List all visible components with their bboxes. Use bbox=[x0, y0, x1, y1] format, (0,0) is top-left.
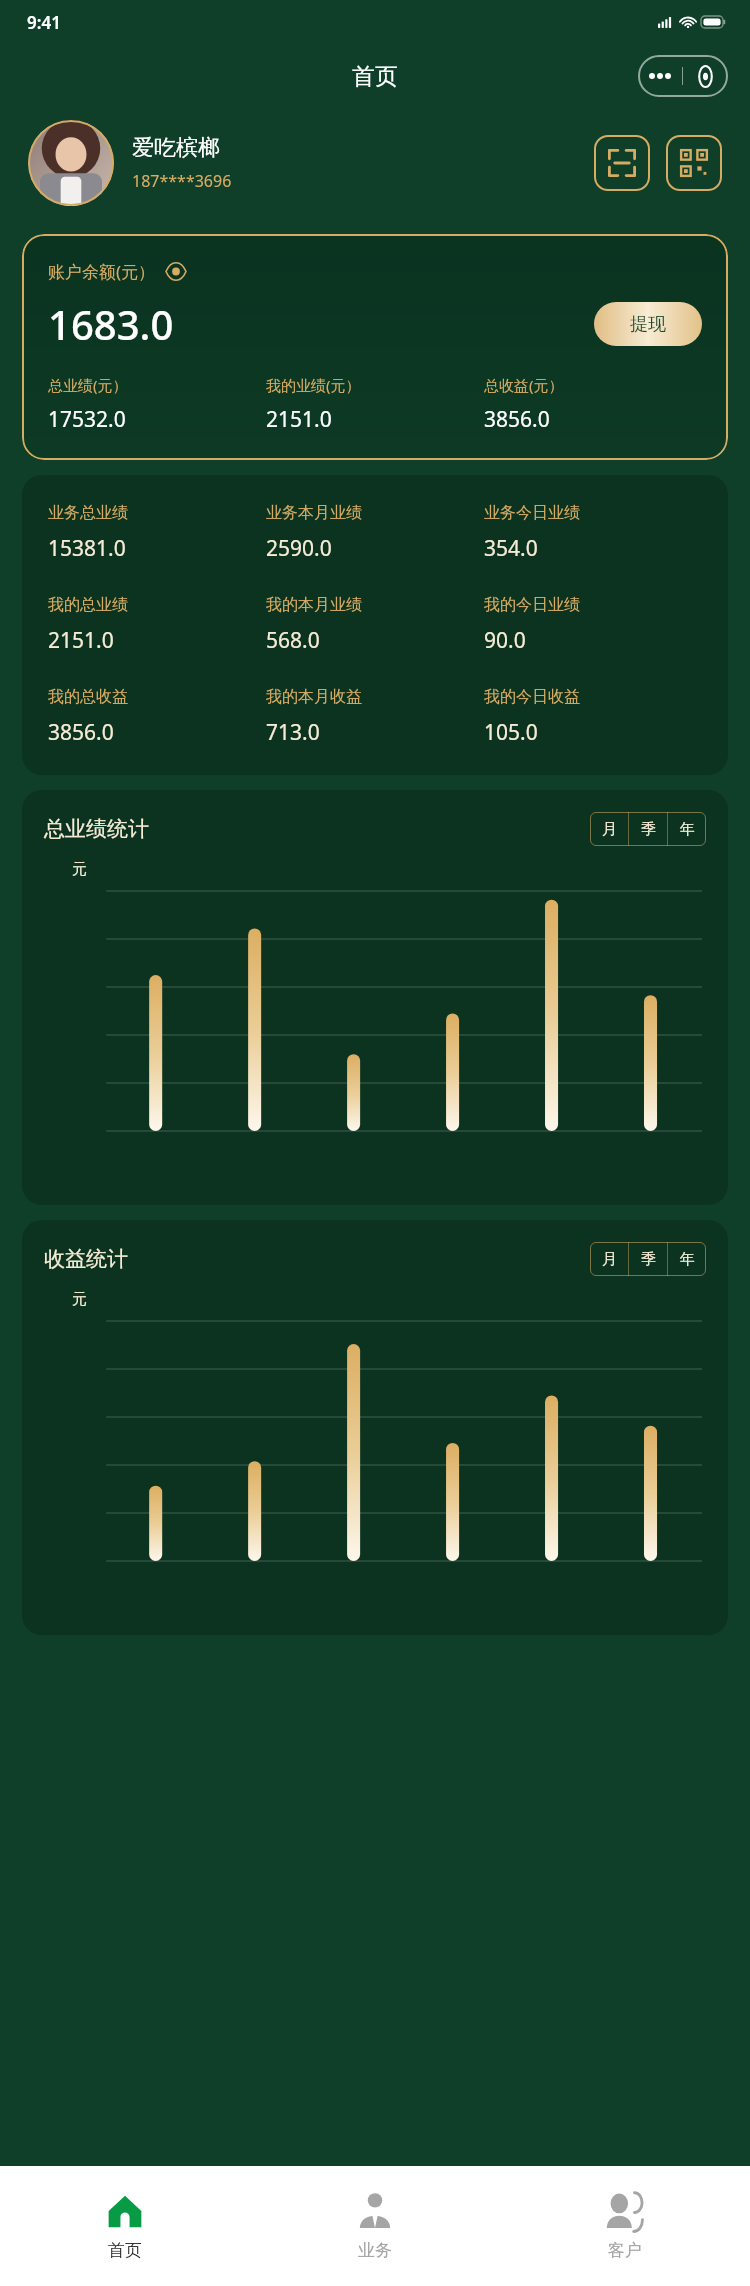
button[interactable]: 月 bbox=[590, 1242, 628, 1276]
button[interactable]: 总业绩统计 bbox=[22, 790, 728, 1205]
staticText: 187****3696 bbox=[132, 170, 232, 192]
staticText: 2151.0 bbox=[266, 405, 332, 434]
staticText: 我的今日业绩 bbox=[484, 595, 580, 615]
staticText: 季 bbox=[641, 1250, 656, 1269]
staticText: 3856.0 bbox=[48, 718, 114, 747]
staticText: 17532.0 bbox=[48, 405, 126, 434]
staticText: 15381.0 bbox=[48, 534, 126, 563]
staticText: 105.0 bbox=[484, 718, 538, 747]
staticText: 业务 bbox=[358, 2240, 392, 2261]
staticText: 提现 bbox=[630, 313, 666, 336]
button[interactable]: 业务总业绩 bbox=[22, 475, 728, 775]
staticText: 我的总收益 bbox=[48, 687, 128, 707]
button[interactable]: 客户 bbox=[500, 2166, 750, 2286]
staticText: 我的业绩(元） bbox=[266, 375, 361, 395]
staticText: 我的今日收益 bbox=[484, 687, 580, 707]
staticText: 713.0 bbox=[266, 718, 320, 747]
button[interactable]: Target bbox=[683, 55, 728, 97]
button[interactable] bbox=[28, 120, 114, 206]
button[interactable]: 提现 bbox=[594, 302, 702, 346]
staticText: 账户余额(元） bbox=[48, 260, 156, 283]
button[interactable]: 账户余额(元） bbox=[22, 234, 728, 460]
staticText: 568.0 bbox=[266, 626, 320, 655]
staticText: 客户 bbox=[608, 2240, 642, 2261]
staticText: 年 bbox=[680, 1250, 695, 1269]
staticText: 业务今日业绩 bbox=[484, 503, 580, 523]
staticText: 季 bbox=[641, 820, 656, 839]
staticText: 业务本月业绩 bbox=[266, 503, 362, 523]
button[interactable]: 月 bbox=[590, 812, 628, 846]
staticText: 爱吃槟榔 bbox=[132, 134, 220, 162]
staticText: 元 bbox=[72, 860, 87, 879]
staticText: 年 bbox=[680, 820, 695, 839]
staticText: 总业绩(元） bbox=[48, 375, 128, 395]
staticText: 3856.0 bbox=[484, 405, 550, 434]
staticText: 收益统计 bbox=[44, 1246, 128, 1272]
staticText: 90.0 bbox=[484, 626, 526, 655]
staticText: 354.0 bbox=[484, 534, 538, 563]
button[interactable]: 业务 bbox=[250, 2166, 500, 2286]
staticText: 9:41 bbox=[27, 11, 61, 34]
staticText: 首页 bbox=[352, 62, 398, 91]
staticText: 我的本月收益 bbox=[266, 687, 362, 707]
staticText: 1683.0 bbox=[48, 297, 174, 351]
staticText: 元 bbox=[72, 1290, 87, 1309]
staticText: 月 bbox=[602, 820, 617, 839]
staticText: 总收益(元） bbox=[484, 375, 564, 395]
staticText: 月 bbox=[602, 1250, 617, 1269]
staticText: 业务总业绩 bbox=[48, 503, 128, 523]
staticText: 2590.0 bbox=[266, 534, 332, 563]
button[interactable]: 年 bbox=[668, 812, 706, 846]
staticText: 首页 bbox=[108, 2240, 142, 2261]
staticText: 总业绩统计 bbox=[44, 816, 149, 842]
button[interactable]: 收益统计 bbox=[22, 1220, 728, 1635]
button[interactable]: 年 bbox=[668, 1242, 706, 1276]
button[interactable]: 季 bbox=[629, 812, 667, 846]
button[interactable]: QR code bbox=[666, 135, 722, 191]
button[interactable]: 首页 bbox=[0, 2166, 250, 2286]
button[interactable]: 季 bbox=[629, 1242, 667, 1276]
staticText: 2151.0 bbox=[48, 626, 114, 655]
staticText: 我的总业绩 bbox=[48, 595, 128, 615]
button[interactable]: Scan bbox=[594, 135, 650, 191]
staticText: 我的本月业绩 bbox=[266, 595, 362, 615]
button[interactable]: More bbox=[638, 55, 682, 97]
